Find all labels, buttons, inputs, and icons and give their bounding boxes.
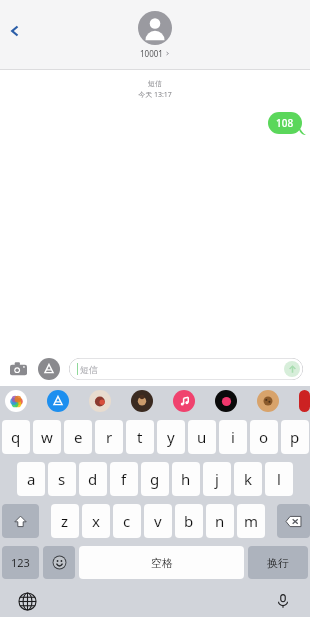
button[interactable]: Back [2,18,28,44]
staticText: 123 [11,555,30,570]
button[interactable]: z [51,504,79,538]
staticText: r [106,427,113,447]
staticText: s [58,469,66,489]
staticText: p [290,427,300,447]
button[interactable]: b [175,504,203,538]
button[interactable]: y [157,420,185,454]
button[interactable]: g [141,462,169,496]
staticText: u [197,427,207,447]
button[interactable]: Send [284,361,300,377]
staticText: a [27,469,36,489]
button[interactable]: u [188,420,216,454]
staticText: h [181,469,191,489]
button[interactable]: w [33,420,61,454]
staticText: x [92,511,100,531]
staticText: z [61,511,69,531]
button[interactable]: s [48,462,76,496]
button[interactable]: App Store [38,358,60,380]
staticText: k [244,469,253,489]
button[interactable]: App 0 [5,390,27,412]
staticText: 短信 [0,79,310,88]
staticText: w [41,427,53,447]
button[interactable]: App 7 [299,390,310,412]
button[interactable]: 空格 [79,546,244,579]
button[interactable]: Camera [7,358,29,380]
button[interactable]: App 5 [215,390,237,412]
button[interactable]: i [219,420,247,454]
button[interactable]: l [265,462,293,496]
button[interactable]: m [237,504,265,538]
button[interactable]: App 2 [89,390,111,412]
staticText: c [123,511,131,531]
button[interactable]: r [95,420,123,454]
button[interactable]: Dictation [272,590,294,612]
button[interactable]: n [206,504,234,538]
staticText: 换行 [267,556,289,570]
staticText: 短信 [80,364,98,375]
button[interactable]: c [113,504,141,538]
button[interactable]: 短信 [69,358,303,380]
button[interactable]: t [126,420,154,454]
button[interactable]: 换行 [248,546,308,579]
button[interactable]: 123 [2,546,39,579]
button[interactable]: o [250,420,278,454]
button[interactable]: q [2,420,30,454]
button[interactable]: Shift [2,504,39,538]
staticText: j [215,469,219,489]
button[interactable]: h [172,462,200,496]
button[interactable]: App 4 [173,390,195,412]
button[interactable]: Change keyboard [16,590,38,612]
staticText: f [121,469,127,489]
button[interactable]: x [82,504,110,538]
button[interactable]: App 3 [131,390,153,412]
button[interactable]: j [203,462,231,496]
staticText: b [184,511,194,531]
staticText: 10001 [140,48,163,59]
button[interactable]: App 6 [257,390,279,412]
staticText: n [215,511,225,531]
staticText: g [150,469,160,489]
staticText: m [244,511,259,531]
button[interactable]: f [110,462,138,496]
staticText: e [74,427,83,447]
staticText: q [11,427,21,447]
staticText: 空格 [151,556,173,570]
staticText: 108 [276,116,294,130]
staticText: 今天 13:17 [0,90,310,100]
staticText: i [231,427,235,447]
button[interactable]: 108 [268,112,302,134]
staticText: o [259,427,269,447]
staticText: d [88,469,98,489]
button[interactable]: d [79,462,107,496]
button[interactable]: 10001 [138,11,172,59]
staticText: l [277,469,281,489]
button[interactable]: e [64,420,92,454]
button[interactable]: a [17,462,45,496]
staticText: y [167,427,175,447]
staticText: v [154,511,162,531]
button[interactable]: p [281,420,309,454]
button[interactable]: App 1 [47,390,69,412]
button[interactable]: k [234,462,262,496]
staticText: t [137,427,143,447]
button[interactable]: v [144,504,172,538]
button[interactable]: Backspace [277,504,310,538]
button[interactable]: Emoji [43,546,75,579]
